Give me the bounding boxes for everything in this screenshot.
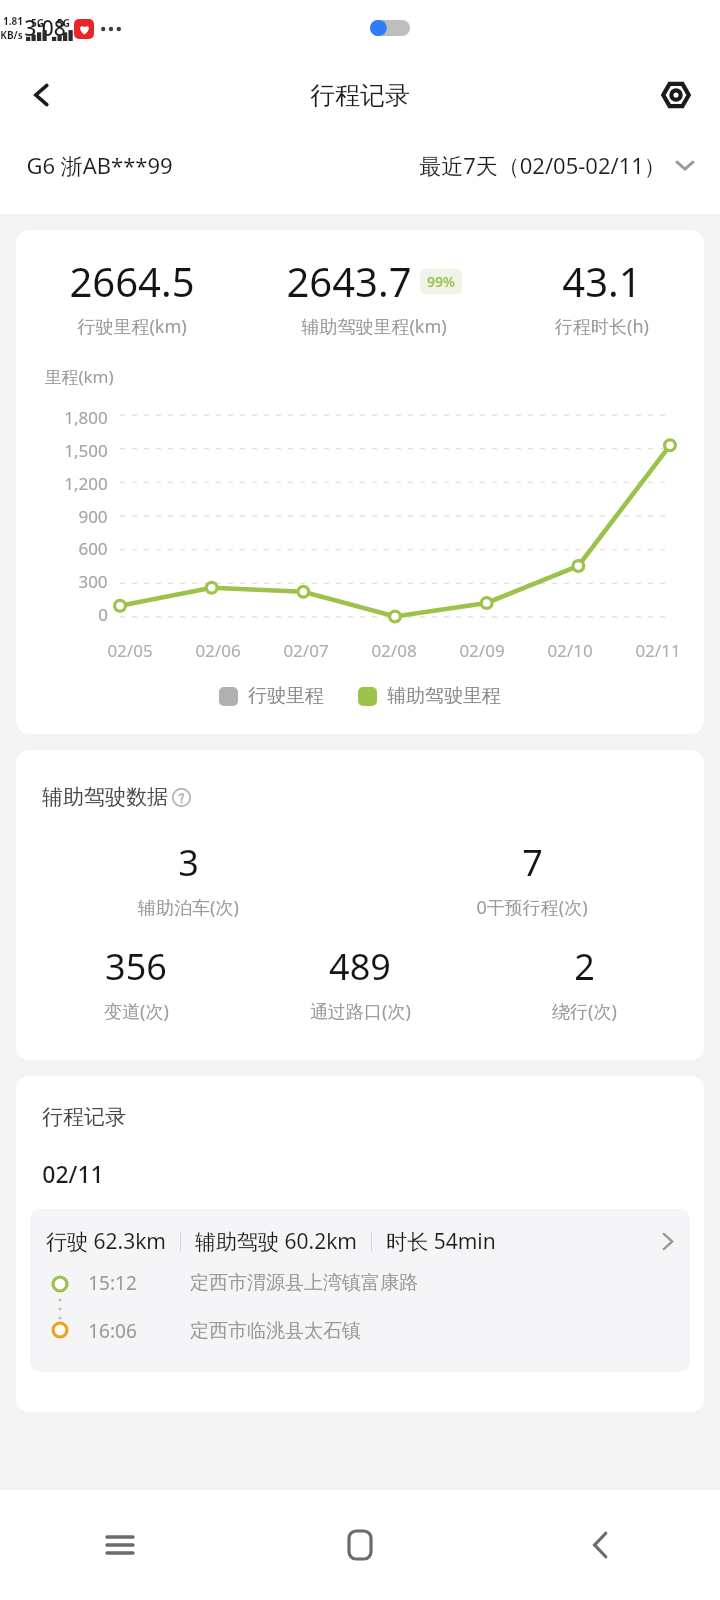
button[interactable]: Back (14, 67, 70, 123)
staticText: 0干预行程(次) (476, 895, 588, 920)
staticText: 600 (78, 537, 108, 560)
staticText: 0 (98, 603, 108, 626)
staticText: 5G (31, 16, 44, 30)
staticText: 99% (427, 272, 455, 291)
staticText: 辅助驾驶 60.2km (195, 1227, 357, 1256)
staticText: 通过路口(次) (310, 999, 411, 1024)
staticText: 02/08 (371, 639, 417, 662)
staticText: 300 (78, 570, 108, 593)
staticText: 行驶里程 (248, 684, 324, 708)
button[interactable]: 行驶里程 (219, 684, 324, 708)
staticText: 3 (178, 838, 199, 887)
staticText: KB/s (0, 28, 23, 42)
staticText: 3:08 (24, 14, 66, 43)
button[interactable]: 行驶 62.3km (30, 1209, 690, 1372)
staticText: 02/07 (283, 639, 329, 662)
staticText: 行驶 62.3km (46, 1227, 166, 1256)
staticText: 900 (78, 505, 108, 528)
staticText: 行程时长(h) (555, 314, 649, 339)
staticText: 1,500 (64, 439, 108, 462)
button[interactable]: 辅助驾驶里程 (358, 684, 501, 708)
staticText: 356 (105, 942, 167, 991)
staticText: 1.81 (3, 14, 23, 28)
staticText: 2643.7 (286, 254, 412, 308)
staticText: 489 (329, 942, 391, 991)
staticText: 辅助驾驶里程(km) (301, 314, 447, 339)
staticText: 最近7天（02/05-02/11） (419, 150, 666, 180)
staticText: 2 (574, 942, 595, 991)
staticText: 变道(次) (104, 999, 169, 1024)
button[interactable]: 最近7天（02/05-02/11） (419, 150, 694, 180)
staticText: 行驶里程(km) (77, 314, 187, 339)
staticText: 辅助驾驶数据 (42, 784, 168, 810)
staticText: 定西市渭源县上湾镇富康路 (190, 1271, 418, 1295)
staticText: 02/05 (107, 639, 153, 662)
staticText: 2664.5 (69, 254, 195, 308)
staticText: G6 浙AB***99 (26, 150, 173, 180)
staticText: 1,200 (64, 472, 108, 495)
staticText: 43.1 (562, 254, 642, 308)
staticText: 7 (522, 838, 543, 887)
staticText: 行程记录 (310, 80, 410, 111)
staticText: 5G (57, 16, 70, 30)
staticText: 15:12 (88, 1270, 137, 1296)
staticText: 里程(km) (44, 365, 114, 388)
button[interactable]: G6 浙AB***99 (26, 150, 173, 180)
staticText: 02/11 (635, 639, 681, 662)
button[interactable]: Back (480, 1490, 720, 1600)
button[interactable]: Recent apps (0, 1490, 240, 1600)
staticText: 定西市临洮县太石镇 (190, 1319, 361, 1343)
button[interactable]: Home (240, 1490, 480, 1600)
staticText: 1,800 (64, 406, 108, 429)
staticText: 时长 54min (386, 1227, 496, 1256)
button[interactable]: 辅助驾驶数据 (42, 784, 191, 810)
staticText: 02/10 (547, 639, 593, 662)
staticText: 辅助驾驶里程 (387, 684, 501, 708)
button[interactable]: Settings (650, 69, 702, 121)
staticText: 行程记录 (42, 1104, 126, 1130)
staticText: 02/11 (42, 1158, 104, 1189)
staticText: 16:06 (88, 1318, 137, 1344)
staticText: 02/09 (459, 639, 505, 662)
staticText: 02/06 (195, 639, 241, 662)
staticText: 辅助泊车(次) (138, 895, 239, 920)
staticText: 绕行(次) (552, 999, 617, 1024)
